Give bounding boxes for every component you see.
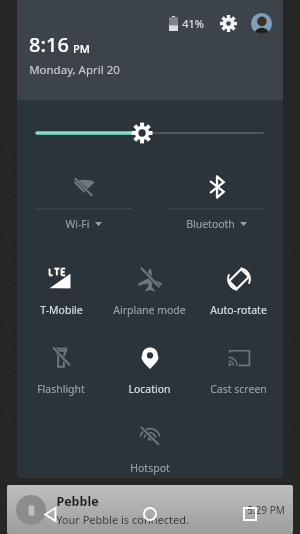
button[interactable]: Flashlight	[17, 331, 105, 410]
staticText: Cast screen	[210, 382, 267, 396]
staticText: Airplane mode	[113, 303, 186, 317]
button[interactable]: Auto-rotate	[194, 252, 283, 331]
button[interactable]: Cast screen	[194, 331, 283, 410]
staticText: Location	[128, 382, 171, 396]
staticText: Your Pebble is connected.	[56, 512, 189, 527]
staticText: 41%	[182, 16, 204, 31]
staticText: Pebble	[56, 493, 99, 510]
button[interactable]: Location	[105, 331, 194, 410]
button[interactable]: Hotspot	[105, 410, 194, 478]
staticText: Bluetooth	[186, 217, 235, 231]
staticText: Auto-rotate	[210, 303, 267, 317]
button[interactable]: Recents	[200, 496, 300, 532]
staticText: 5:29 PM	[247, 503, 285, 517]
staticText: Monday, April 20	[29, 62, 120, 78]
button[interactable]: T-Mobile	[17, 252, 105, 331]
button[interactable]: Settings	[217, 12, 239, 34]
staticText: Hotspot	[130, 461, 170, 475]
button[interactable]: Brightness	[17, 118, 283, 148]
button[interactable]: Back	[0, 496, 100, 532]
staticText: T-Mobile	[40, 303, 83, 317]
button[interactable]: Wi-Fi	[17, 168, 150, 238]
staticText: Wi-Fi	[65, 217, 90, 231]
button[interactable]: Airplane mode	[105, 252, 194, 331]
button[interactable]: Home	[100, 496, 200, 532]
staticText: 8:16	[29, 31, 69, 58]
staticText: PM	[73, 41, 90, 56]
button[interactable]: Pebble	[7, 485, 293, 534]
staticText: Flashlight	[37, 382, 85, 396]
button[interactable]: User profile	[251, 13, 272, 34]
button[interactable]: Bluetooth	[150, 168, 283, 238]
